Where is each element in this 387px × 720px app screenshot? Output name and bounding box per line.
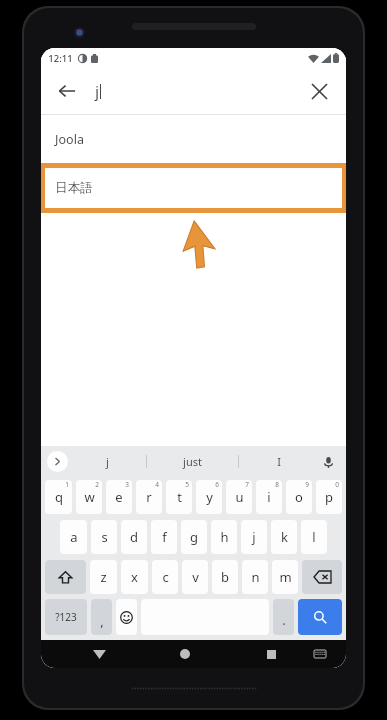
button[interactable]: r — [136, 480, 162, 514]
staticText: 8 — [275, 480, 279, 489]
staticText: 2 — [95, 480, 99, 489]
button[interactable]: i — [256, 480, 282, 514]
staticText: 0 — [335, 480, 339, 489]
staticText: k — [281, 528, 288, 546]
button[interactable]: Voice input — [318, 452, 338, 472]
staticText: 5 — [185, 480, 189, 489]
button[interactable]: , — [91, 599, 112, 635]
staticText: 7 — [245, 480, 249, 489]
button[interactable]: Emoji — [116, 599, 137, 635]
staticText: j — [252, 528, 256, 546]
button[interactable]: Home — [170, 640, 200, 668]
staticText: d — [130, 528, 138, 546]
staticText: y — [206, 488, 213, 506]
button[interactable]: Shift — [45, 560, 86, 594]
button[interactable]: l — [301, 520, 327, 554]
button[interactable]: just — [147, 446, 238, 477]
staticText: . — [282, 611, 286, 629]
staticText: f — [162, 528, 167, 546]
staticText: 12:11 — [48, 52, 73, 65]
button[interactable]: o — [286, 480, 312, 514]
staticText: v — [192, 568, 199, 586]
staticText: 9 — [305, 480, 309, 489]
staticText: s — [101, 528, 108, 546]
button[interactable]: x — [121, 560, 148, 594]
button[interactable]: n — [242, 560, 268, 594]
staticText: h — [220, 528, 229, 546]
staticText: j — [106, 454, 109, 469]
button[interactable]: m — [272, 560, 298, 594]
staticText: 4 — [155, 480, 159, 489]
staticText: t — [177, 488, 182, 506]
button[interactable]: g — [181, 520, 207, 554]
button[interactable]: z — [90, 560, 117, 594]
staticText: j — [95, 82, 99, 101]
button[interactable]: w — [76, 480, 102, 514]
staticText: m — [279, 568, 292, 586]
staticText: , — [100, 612, 104, 630]
staticText: q — [55, 488, 63, 506]
staticText: x — [131, 568, 138, 586]
button[interactable]: e — [106, 480, 132, 514]
staticText: w — [84, 488, 95, 506]
staticText: o — [295, 488, 303, 506]
button[interactable]: 日本語 — [41, 163, 346, 213]
button[interactable]: Back — [47, 71, 87, 111]
button[interactable]: j — [68, 446, 146, 477]
staticText: just — [183, 454, 202, 469]
button[interactable]: y — [196, 480, 222, 514]
staticText: 日本語 — [55, 180, 93, 196]
staticText: p — [325, 488, 333, 506]
button[interactable]: j — [241, 520, 267, 554]
staticText: c — [162, 568, 169, 586]
staticText: z — [100, 568, 107, 586]
staticText: 6 — [215, 480, 219, 489]
staticText: e — [115, 488, 123, 506]
button[interactable]: h — [211, 520, 237, 554]
staticText: Joola — [55, 131, 84, 148]
button[interactable]: s — [91, 520, 117, 554]
staticText: I — [277, 454, 281, 469]
button[interactable]: I — [239, 446, 318, 477]
staticText: n — [251, 568, 260, 586]
staticText: 1 — [65, 480, 69, 489]
staticText: a — [70, 528, 78, 546]
button[interactable]: More suggestions — [47, 451, 68, 472]
button[interactable]: ?123 — [45, 599, 87, 635]
button[interactable]: t — [166, 480, 192, 514]
button[interactable]: Backspace — [302, 560, 342, 594]
staticText: b — [221, 568, 229, 586]
button[interactable]: Switch keyboard — [307, 641, 333, 667]
button[interactable]: Recent apps — [256, 640, 286, 668]
staticText: ?123 — [55, 610, 77, 624]
button[interactable]: f — [151, 520, 177, 554]
button[interactable]: Clear search — [299, 71, 339, 111]
button[interactable]: p — [316, 480, 342, 514]
button[interactable]: a — [60, 520, 87, 554]
button[interactable]: Back — [84, 640, 114, 668]
button[interactable]: . — [273, 599, 294, 635]
staticText: 3 — [125, 480, 129, 489]
staticText: l — [312, 528, 316, 546]
button[interactable]: Joola — [41, 115, 346, 163]
button[interactable]: b — [212, 560, 238, 594]
button[interactable]: u — [226, 480, 252, 514]
staticText: i — [267, 488, 271, 506]
button[interactable]: c — [152, 560, 178, 594]
button[interactable]: v — [182, 560, 208, 594]
button[interactable]: Search — [298, 599, 342, 635]
button[interactable]: q — [45, 480, 72, 514]
button[interactable]: k — [271, 520, 297, 554]
button[interactable]: d — [121, 520, 147, 554]
staticText: r — [146, 488, 152, 506]
staticText: g — [190, 528, 198, 546]
staticText: u — [235, 488, 244, 506]
